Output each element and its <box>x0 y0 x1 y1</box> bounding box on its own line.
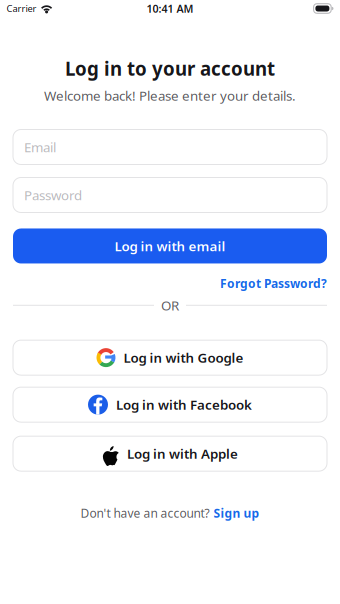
button[interactable]: Email <box>13 129 327 164</box>
button[interactable]: Log in with email <box>13 228 327 263</box>
staticText: Welcome back! Please enter your details. <box>44 87 296 104</box>
staticText: OR <box>161 296 179 314</box>
staticText: Log in to your account <box>65 56 275 81</box>
staticText: Password <box>24 186 82 204</box>
staticText: Email <box>24 138 56 156</box>
staticText: Forgot Password? <box>220 275 327 291</box>
staticText: Don't have an account? <box>80 505 209 521</box>
button[interactable]: Password <box>13 177 327 212</box>
button[interactable]: Log in with Google <box>13 340 327 375</box>
button[interactable]: Don't have an account? <box>80 505 259 521</box>
button[interactable]: Forgot Password? <box>220 275 327 291</box>
button[interactable]: Log in with Apple <box>13 436 327 471</box>
staticText: 10:41 AM <box>146 1 193 16</box>
staticText: Log in with Facebook <box>116 396 252 413</box>
button[interactable]: Log in with Facebook <box>13 387 327 422</box>
staticText: Sign up <box>213 505 259 521</box>
staticText: Log in with email <box>114 237 225 255</box>
staticText: Log in with Google <box>123 349 243 366</box>
staticText: Log in with Apple <box>127 445 238 462</box>
staticText: Carrier <box>6 2 36 15</box>
